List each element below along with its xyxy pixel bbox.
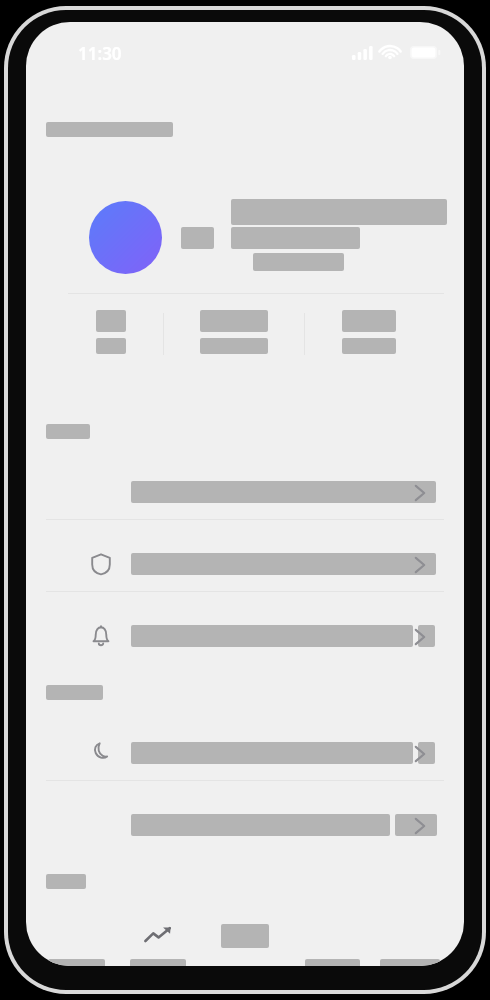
button[interactable]: Notifications	[46, 609, 444, 663]
button[interactable]: Account	[46, 465, 444, 519]
button[interactable]	[200, 310, 268, 354]
button[interactable]: Privacy	[46, 537, 444, 591]
button[interactable]: Trends	[130, 920, 186, 966]
button[interactable]	[96, 310, 126, 354]
button[interactable]: Appearance	[46, 726, 444, 780]
button[interactable]	[342, 310, 396, 354]
button[interactable]: Language	[46, 798, 444, 852]
staticText: 11:30	[78, 42, 122, 65]
button[interactable]	[46, 192, 444, 292]
